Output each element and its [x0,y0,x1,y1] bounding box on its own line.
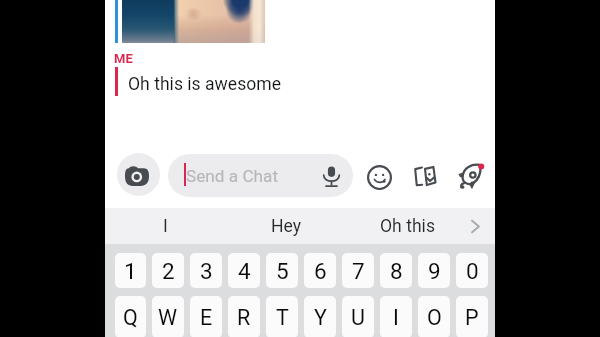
button[interactable]: O [418,296,450,337]
button[interactable]: Oh this [347,208,468,244]
staticText: U [351,305,365,330]
button[interactable]: Q [115,296,146,337]
button[interactable]: 9 [418,253,450,288]
button[interactable]: Emoji [361,159,397,195]
staticText: 6 [314,258,327,284]
button[interactable]: 3 [190,253,222,288]
staticText: O [427,305,442,330]
button[interactable]: 7 [342,253,374,288]
staticText: Q [123,305,138,330]
button[interactable]: Oh this is awesome [128,74,282,95]
staticText: Y [314,305,327,330]
staticText: E [200,305,213,330]
button[interactable]: 1 [115,253,146,288]
button[interactable]: 5 [266,253,298,288]
staticText: 4 [238,258,251,284]
button[interactable]: Games [453,157,487,191]
button[interactable]: 4 [228,253,260,288]
button[interactable]: Snap [122,0,265,43]
button[interactable]: U [342,296,374,337]
button[interactable]: E [190,296,222,337]
staticText: 3 [200,258,213,284]
staticText: 8 [390,258,403,284]
staticText: T [276,305,289,330]
staticText: Oh this [380,216,435,237]
button[interactable]: Send a Chat [168,154,353,197]
button[interactable]: 6 [304,253,336,288]
staticText: W [158,305,178,330]
button[interactable]: I [380,296,412,337]
staticText: 5 [276,258,289,284]
button[interactable]: Stickers [407,158,443,194]
staticText: 0 [466,258,479,284]
button[interactable]: More suggestions [462,208,489,244]
staticText: 1 [124,258,137,284]
staticText: Hey [271,216,302,237]
button[interactable]: T [266,296,298,337]
button[interactable]: Y [304,296,336,337]
staticText: Send a Chat [186,166,279,186]
staticText: 7 [352,258,365,284]
staticText: 2 [162,258,175,284]
staticText: P [465,305,479,330]
button[interactable]: 2 [152,253,184,288]
staticText: ME [114,51,134,66]
button[interactable]: Hey [226,208,347,244]
staticText: R [237,305,251,330]
button[interactable]: Camera [117,153,160,196]
button[interactable]: R [228,296,260,337]
button[interactable]: I [105,208,226,244]
button[interactable]: 8 [380,253,412,288]
button[interactable]: Voice note [318,163,344,189]
button[interactable]: 0 [456,253,488,288]
button[interactable]: P [456,296,488,337]
staticText: I [163,216,168,237]
staticText: 9 [428,258,441,284]
staticText: I [393,305,399,330]
button[interactable]: W [152,296,184,337]
